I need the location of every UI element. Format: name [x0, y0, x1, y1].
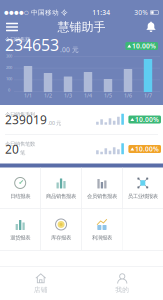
staticText: 1/2 [44, 92, 52, 99]
staticText: .00 元 [60, 45, 79, 54]
staticText: 20 [5, 141, 19, 157]
staticText: 300 [6, 53, 12, 59]
staticText: 200 [6, 65, 12, 70]
staticText: 店铺 [34, 286, 48, 294]
staticText: 慧铺助手 [57, 20, 105, 34]
button[interactable]: 日结报表 [0, 167, 40, 208]
staticText: 今日销售毛利 [5, 111, 35, 118]
staticText: 日结报表 [10, 193, 30, 200]
staticText: .00 元 [48, 119, 61, 126]
staticText: 员工业绩报表 [128, 193, 158, 200]
button[interactable]: 库存报表 [41, 209, 81, 250]
staticText: 1/6 [124, 92, 132, 99]
button[interactable]: 我的 [81, 267, 163, 300]
button[interactable]: Notifications [139, 18, 163, 36]
staticText: 1/3 [64, 92, 72, 99]
staticText: 库存报表 [51, 234, 71, 241]
staticText: 10.00% [135, 115, 159, 124]
button[interactable]: 店铺 [0, 267, 81, 300]
staticText: 239019 [5, 112, 47, 127]
staticText: 1/5 [104, 92, 112, 99]
staticText: 笔 [20, 149, 25, 156]
staticText: 利润报表 [92, 234, 112, 241]
staticText: 会员销售报表 [87, 193, 117, 200]
button[interactable]: 商品销售报表 [41, 167, 81, 208]
staticText: 30% [134, 8, 148, 17]
staticText: 1/7 [144, 92, 152, 99]
staticText: 10.00% [135, 145, 159, 153]
staticText: 今日销售笔数 [5, 141, 35, 147]
button[interactable]: 利润报表 [82, 209, 122, 250]
staticText: ●●●●○ [4, 9, 29, 16]
staticText: 今日销售额 [5, 36, 30, 43]
staticText: 234653 [5, 34, 59, 55]
staticText: 1/4 [84, 92, 92, 99]
staticText: 令 [61, 8, 68, 17]
staticText: 商品销售报表 [46, 193, 76, 200]
button[interactable]: 会员销售报表 [82, 167, 122, 208]
staticText: 中国移动 [31, 8, 59, 17]
staticText: 退货报表 [10, 234, 30, 241]
button[interactable]: 退货报表 [0, 209, 40, 250]
staticText: 我的 [115, 286, 129, 294]
button[interactable]: Menu [0, 18, 24, 36]
staticText: 100 [6, 76, 12, 81]
staticText: 1/1 [24, 92, 32, 99]
staticText: 11:34 [92, 8, 110, 17]
button[interactable]: 员工业绩报表 [123, 167, 163, 208]
staticText: 10.00% [132, 42, 156, 50]
staticText: 0 [8, 87, 10, 93]
